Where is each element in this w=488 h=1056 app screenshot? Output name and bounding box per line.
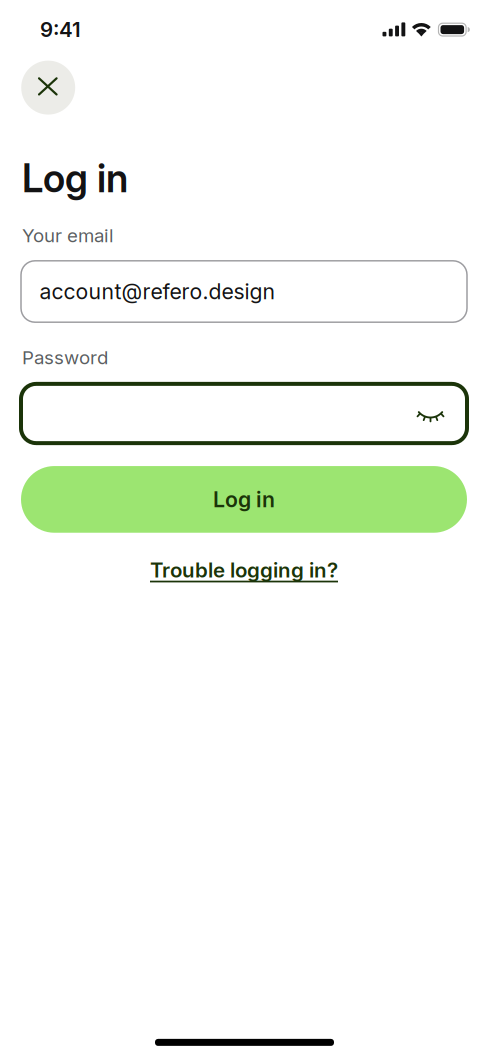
staticText: Password	[22, 346, 108, 369]
button[interactable]: Trouble logging in?	[114, 553, 374, 587]
staticText: Trouble logging in?	[150, 558, 338, 582]
staticText: 9:41	[40, 17, 81, 42]
button[interactable]: Log in	[21, 466, 467, 533]
button[interactable]: Close	[21, 61, 75, 115]
staticText: Log in	[22, 155, 128, 201]
staticText: Log in	[213, 486, 275, 512]
staticText: account@refero.design	[40, 279, 276, 304]
button[interactable]: Show password	[407, 383, 453, 444]
staticText: Your email	[22, 224, 114, 247]
